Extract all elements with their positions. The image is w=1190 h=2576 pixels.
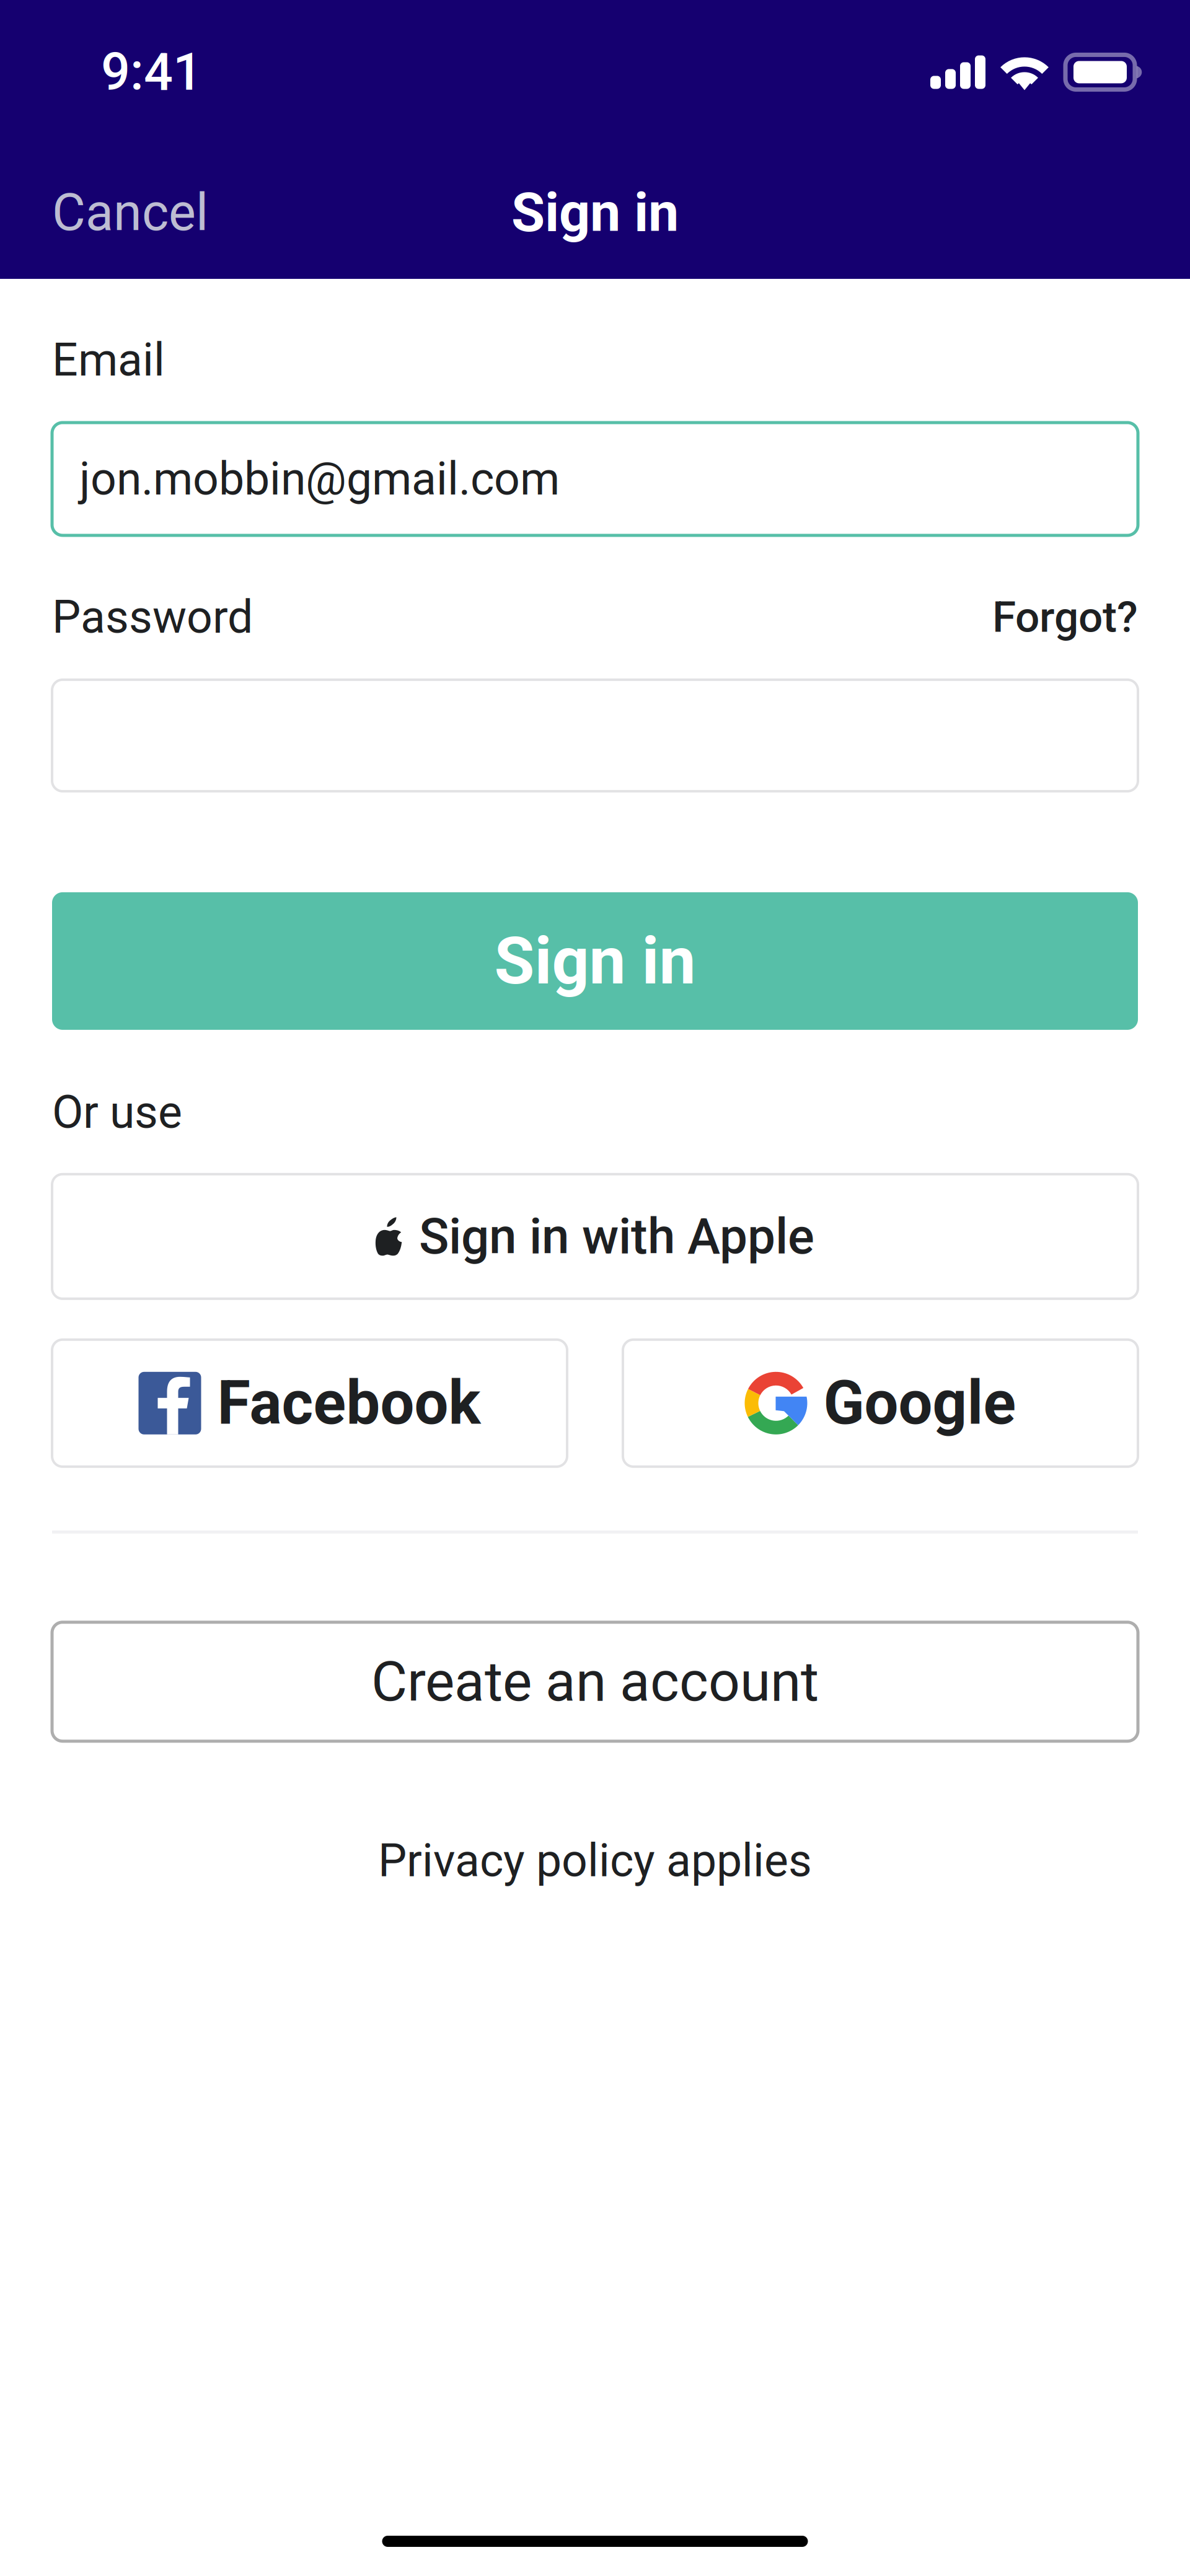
staticText: Sign in with Apple: [419, 1207, 814, 1266]
staticText: Sign in: [511, 181, 679, 244]
button[interactable]: Sign in with Apple: [52, 1174, 1138, 1299]
button[interactable]: Create an account: [52, 1622, 1138, 1741]
button[interactable]: Sign in: [52, 892, 1138, 1030]
button[interactable]: Facebook: [52, 1340, 567, 1467]
staticText: Password: [52, 590, 253, 644]
button[interactable]: Google: [623, 1340, 1138, 1467]
staticText: Or use: [52, 1086, 182, 1139]
staticText: Google: [823, 1368, 1016, 1439]
staticText: Forgot?: [992, 592, 1138, 642]
staticText: Create an account: [371, 1649, 819, 1714]
staticText: jon.mobbin@gmail.com: [79, 452, 560, 506]
staticText: Cancel: [52, 183, 208, 243]
staticText: Sign in: [494, 923, 696, 999]
staticText: 9:41: [101, 42, 202, 102]
staticText: Privacy policy applies: [378, 1834, 812, 1887]
button[interactable]: Cancel: [0, 169, 223, 256]
staticText: Facebook: [217, 1368, 481, 1439]
button[interactable]: Forgot?: [992, 592, 1138, 642]
button[interactable]: Privacy policy applies: [52, 1834, 1138, 1887]
staticText: Email: [52, 333, 165, 387]
